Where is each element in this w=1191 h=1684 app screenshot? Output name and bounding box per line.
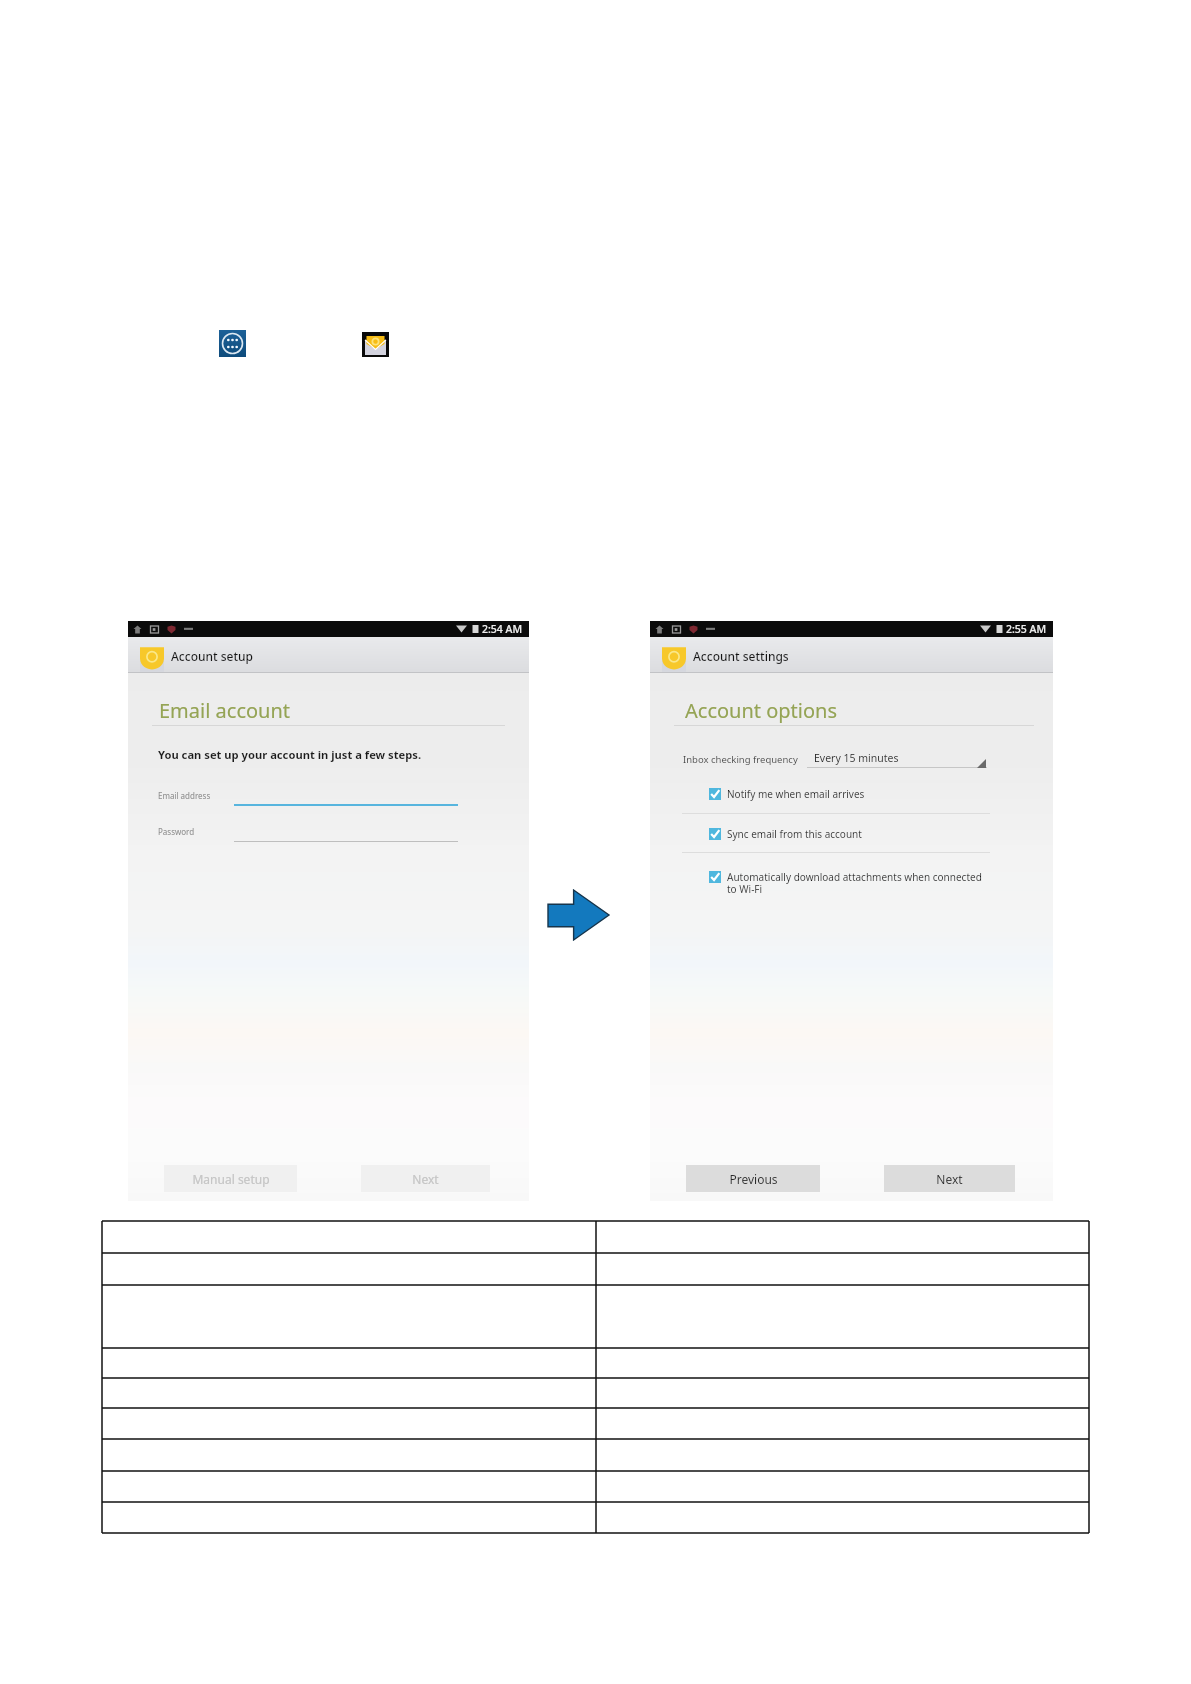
button[interactable]: All apps bbox=[219, 330, 246, 357]
staticText: Account setup bbox=[171, 648, 254, 664]
staticText: Inbox checking frequency bbox=[683, 753, 798, 766]
button[interactable]: Automatically download attachments when … bbox=[709, 870, 1011, 896]
staticText: Email account bbox=[159, 697, 291, 724]
staticText: Account options bbox=[685, 697, 838, 724]
button[interactable]: Email address field bbox=[156, 785, 460, 809]
button[interactable]: Previous bbox=[686, 1165, 820, 1192]
staticText: 2:54 AM bbox=[482, 622, 523, 636]
button[interactable]: Next step bbox=[548, 890, 609, 940]
staticText: Manual setup bbox=[192, 1171, 270, 1187]
button[interactable]: Next bbox=[361, 1165, 490, 1192]
staticText: Next bbox=[412, 1171, 439, 1187]
button[interactable]: Notify me when email arrives bbox=[709, 787, 1011, 801]
staticText: 2:55 AM bbox=[1006, 622, 1047, 636]
button[interactable]: Sync email from this account bbox=[709, 827, 1011, 841]
staticText: Previous bbox=[729, 1171, 778, 1187]
staticText: Notify me when email arrives bbox=[727, 787, 865, 801]
button[interactable]: Inbox checking frequency bbox=[807, 747, 987, 771]
staticText: You can set up your account in just a fe… bbox=[158, 747, 422, 762]
button[interactable]: Email bbox=[362, 332, 389, 357]
staticText: Every 15 minutes bbox=[814, 751, 899, 765]
button[interactable]: Password field bbox=[156, 821, 460, 845]
button[interactable]: Account setup bbox=[128, 637, 529, 673]
button[interactable]: Account settings bbox=[650, 637, 1053, 673]
button[interactable]: Manual setup bbox=[164, 1165, 297, 1192]
staticText: Password bbox=[158, 826, 195, 837]
staticText: Account settings bbox=[693, 648, 789, 664]
staticText: Next bbox=[936, 1171, 963, 1187]
button[interactable]: Next bbox=[884, 1165, 1015, 1192]
staticText: Sync email from this account bbox=[727, 827, 862, 841]
staticText: Automatically download attachments when … bbox=[727, 870, 982, 896]
staticText: Email address bbox=[158, 790, 211, 801]
